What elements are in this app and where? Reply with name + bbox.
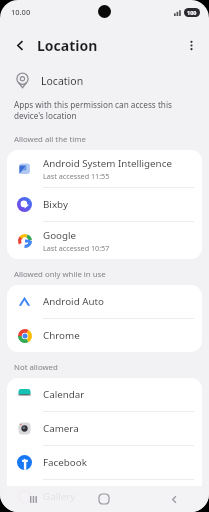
staticText: 100 [187, 9, 197, 16]
staticText: Camera [43, 422, 79, 435]
staticText: Location [41, 74, 84, 88]
staticText: Last accessed 11:55 [43, 171, 110, 181]
staticText: Calendar [43, 388, 85, 401]
button[interactable]: Back [139, 486, 209, 512]
staticText: Android Auto [43, 295, 104, 308]
staticText: Allowed only while in use [14, 269, 209, 280]
staticText: Gallery [43, 490, 76, 503]
staticText: Bixby [43, 198, 68, 211]
button[interactable]: Bixby [7, 188, 202, 221]
staticText: Apps with this permission can access thi… [14, 99, 189, 122]
button[interactable]: Recents [0, 486, 69, 512]
staticText: Location [37, 36, 98, 55]
button[interactable]: Google [7, 222, 202, 259]
staticText: Android System Intelligence [43, 157, 172, 170]
button[interactable]: Gallery [7, 480, 202, 512]
button[interactable]: Facebook [7, 446, 202, 479]
staticText: Google [43, 229, 77, 242]
button[interactable]: Home [69, 486, 139, 512]
button[interactable]: Android Auto [7, 285, 202, 318]
staticText: Chrome [43, 329, 80, 342]
button[interactable]: Chrome [7, 319, 202, 352]
staticText: 10.00 [11, 7, 31, 17]
button[interactable]: Back [6, 31, 34, 59]
staticText: Last accessed 10:57 [43, 243, 110, 253]
staticText: Facebook [43, 456, 87, 469]
button[interactable]: Android System Intelligence [7, 150, 202, 187]
staticText: Allowed all the time [14, 134, 209, 145]
button[interactable]: More options [178, 32, 204, 58]
staticText: Not allowed [14, 362, 209, 373]
button[interactable]: Camera [7, 412, 202, 445]
button[interactable]: Calendar [7, 378, 202, 411]
